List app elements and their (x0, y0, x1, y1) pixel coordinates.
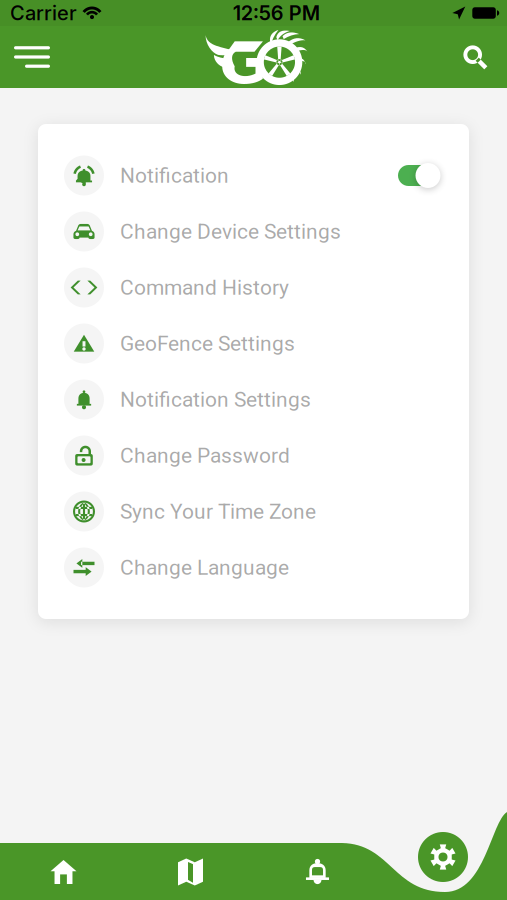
button[interactable]: Command History (38, 259, 469, 315)
button[interactable]: Notifications (254, 844, 381, 900)
staticText: Carrier (10, 1, 77, 25)
button[interactable]: Change Password (38, 427, 469, 483)
staticText: GeoFence Settings (120, 331, 295, 356)
button[interactable]: Change Language (38, 539, 469, 595)
button[interactable]: Sync Your Time Zone (38, 483, 469, 539)
button[interactable]: Notification Settings (38, 371, 469, 427)
button[interactable]: Settings (418, 832, 468, 882)
button[interactable]: Search (449, 34, 501, 80)
button[interactable]: GeoFence Settings (38, 315, 469, 371)
staticText: Notification Settings (120, 387, 311, 412)
staticText: 12:56 PM (233, 1, 320, 25)
staticText: Sync Your Time Zone (120, 499, 316, 524)
staticText: Command History (120, 275, 289, 300)
button[interactable]: Notification (38, 147, 469, 203)
staticText: Notification (120, 163, 229, 188)
button[interactable]: Home (0, 844, 127, 900)
staticText: Change Password (120, 443, 290, 468)
button[interactable]: Menu (6, 34, 58, 80)
button[interactable]: Map (127, 844, 254, 900)
staticText: Change Device Settings (120, 219, 341, 244)
button[interactable]: Change Device Settings (38, 203, 469, 259)
staticText: Change Language (120, 555, 289, 580)
